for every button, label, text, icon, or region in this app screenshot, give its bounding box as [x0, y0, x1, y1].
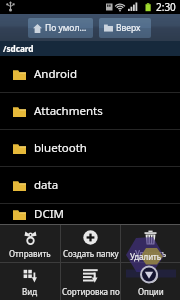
staticText: Вид — [22, 286, 38, 297]
staticText: Удалить — [130, 251, 162, 262]
button[interactable]: По умол... — [28, 18, 93, 38]
button[interactable]: data — [0, 167, 180, 203]
button[interactable]: Создать папку — [61, 225, 120, 259]
staticText: Вверх — [116, 22, 141, 34]
button[interactable]: bluetooth — [0, 130, 180, 166]
staticText: 2:30 — [156, 0, 176, 14]
staticText: Отправить — [9, 248, 51, 259]
button[interactable]: Опции — [121, 263, 180, 297]
staticText: bluetooth — [34, 140, 87, 156]
staticText: Удалить — [135, 248, 167, 259]
staticText: data — [34, 177, 59, 193]
button[interactable]: Сортировка по — [61, 263, 120, 297]
staticText: По умол... — [45, 22, 87, 34]
button[interactable]: Вверх — [99, 18, 151, 38]
staticText: Android — [34, 66, 78, 82]
button[interactable]: Удалить — [121, 225, 180, 259]
staticText: Сортировка по — [62, 286, 120, 297]
staticText: Attachments — [34, 103, 103, 119]
staticText: Создать папку — [63, 248, 119, 259]
staticText: Опции — [138, 286, 164, 297]
button[interactable]: Android — [0, 56, 180, 92]
button[interactable]: Вид — [0, 263, 60, 297]
button[interactable]: Attachments — [0, 93, 180, 129]
button[interactable]: DCIM — [0, 204, 180, 224]
staticText: /sdcard — [3, 43, 34, 54]
staticText: DCIM — [34, 206, 64, 222]
button[interactable]: Отправить — [0, 225, 60, 259]
